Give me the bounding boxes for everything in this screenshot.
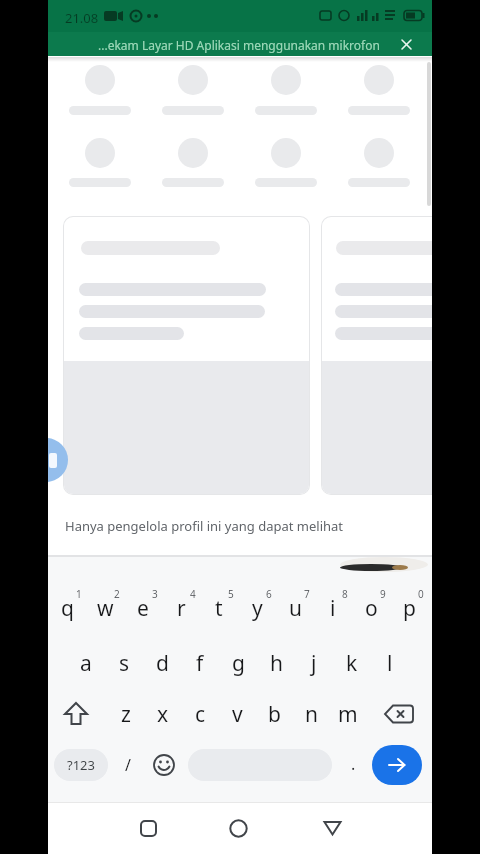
staticText: 5: [228, 587, 234, 601]
button[interactable]: r: [162, 592, 200, 624]
button[interactable]: o: [352, 592, 390, 624]
staticText: 9: [380, 587, 386, 601]
staticText: e: [137, 594, 149, 623]
staticText: a: [80, 649, 92, 678]
staticText: q: [61, 594, 74, 623]
button[interactable]: t: [200, 592, 238, 624]
button[interactable]: c: [181, 698, 219, 730]
staticText: /: [125, 754, 131, 776]
button[interactable]: z: [107, 698, 145, 730]
staticText: i: [330, 594, 336, 623]
button[interactable]: [323, 821, 342, 836]
button[interactable]: w: [86, 592, 124, 624]
staticText: k: [346, 649, 358, 678]
button[interactable]: [229, 819, 248, 838]
staticText: y: [252, 594, 263, 623]
staticText: .: [351, 753, 356, 775]
button[interactable]: v: [218, 698, 256, 730]
button[interactable]: j: [295, 647, 333, 679]
button[interactable]: x: [144, 698, 182, 730]
button[interactable]: [372, 745, 422, 785]
staticText: 3: [152, 587, 158, 601]
staticText: b: [268, 700, 281, 729]
staticText: u: [289, 594, 302, 623]
staticText: s: [119, 649, 130, 678]
button[interactable]: s: [105, 647, 143, 679]
button[interactable]: u: [276, 592, 314, 624]
button[interactable]: q: [48, 592, 86, 624]
staticText: c: [195, 700, 206, 729]
button[interactable]: [48, 438, 68, 482]
button[interactable]: [62, 701, 90, 727]
staticText: 21.08: [65, 9, 99, 27]
staticText: j: [311, 649, 317, 678]
staticText: 6: [266, 587, 272, 601]
button[interactable]: ...ekam Layar HD Aplikasi menggunakan mi…: [48, 32, 432, 56]
button[interactable]: [63, 216, 310, 495]
button[interactable]: n: [292, 698, 330, 730]
button[interactable]: g: [219, 647, 257, 679]
button[interactable]: [401, 39, 412, 50]
staticText: ...ekam Layar HD Aplikasi menggunakan mi…: [98, 37, 380, 53]
staticText: 7: [304, 587, 310, 601]
button[interactable]: ?123: [54, 749, 108, 781]
staticText: h: [270, 649, 283, 678]
button[interactable]: l: [371, 647, 409, 679]
staticText: p: [403, 594, 416, 623]
button[interactable]: a: [67, 647, 105, 679]
button[interactable]: [321, 216, 432, 495]
staticText: 1: [76, 587, 82, 601]
button[interactable]: [140, 820, 157, 837]
staticText: w: [97, 594, 114, 623]
staticText: g: [232, 649, 245, 678]
button[interactable]: f: [181, 647, 219, 679]
button[interactable]: [153, 754, 175, 776]
staticText: 2: [114, 587, 120, 601]
staticText: 8: [342, 587, 348, 601]
button[interactable]: k: [333, 647, 371, 679]
staticText: r: [177, 594, 186, 623]
staticText: z: [121, 700, 131, 729]
button[interactable]: b: [255, 698, 293, 730]
staticText: 4: [190, 587, 196, 601]
staticText: n: [305, 700, 318, 729]
staticText: f: [196, 649, 204, 678]
button[interactable]: i: [314, 592, 352, 624]
button[interactable]: m: [329, 698, 367, 730]
staticText: t: [215, 594, 223, 623]
staticText: 0: [418, 587, 424, 601]
staticText: Hanya pengelola profil ini yang dapat me…: [65, 517, 344, 535]
button[interactable]: /: [109, 749, 147, 781]
button[interactable]: d: [143, 647, 181, 679]
button[interactable]: [383, 704, 415, 724]
staticText: ?123: [67, 756, 95, 774]
staticText: v: [232, 700, 243, 729]
staticText: o: [365, 594, 378, 623]
button[interactable]: p: [390, 592, 428, 624]
staticText: x: [157, 700, 169, 729]
staticText: m: [338, 700, 358, 729]
button[interactable]: y: [238, 592, 276, 624]
button[interactable]: e: [124, 592, 162, 624]
staticText: l: [387, 649, 393, 678]
button[interactable]: h: [257, 647, 295, 679]
staticText: d: [156, 649, 169, 678]
